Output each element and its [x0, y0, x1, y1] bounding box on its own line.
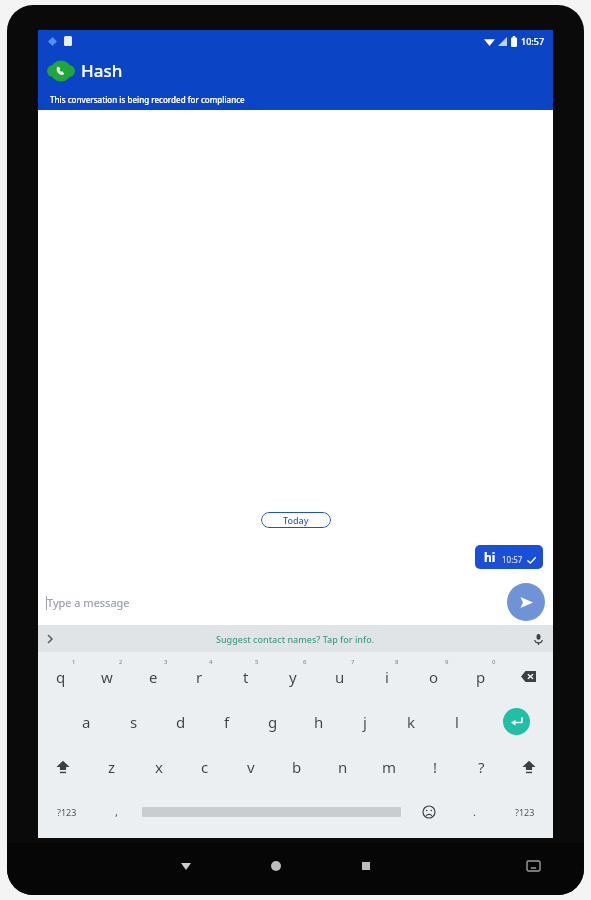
- staticText: j: [363, 712, 367, 732]
- button[interactable]: r: [176, 654, 222, 699]
- button[interactable]: u: [316, 654, 363, 699]
- staticText: z: [108, 757, 116, 777]
- staticText: e: [149, 667, 158, 687]
- staticText: Type a message: [47, 595, 130, 610]
- button[interactable]: e: [130, 654, 176, 699]
- button[interactable]: v: [228, 744, 274, 789]
- button[interactable]: c: [182, 744, 228, 789]
- button[interactable]: k: [388, 699, 434, 744]
- staticText: o: [429, 667, 439, 687]
- staticText: x: [155, 757, 163, 777]
- staticText: Hash: [81, 59, 123, 82]
- staticText: hi: [484, 549, 496, 565]
- button[interactable]: h: [296, 699, 342, 744]
- button[interactable]: Expand suggestions: [42, 631, 58, 647]
- staticText: ?123: [57, 806, 77, 818]
- staticText: p: [476, 667, 486, 687]
- button[interactable]: a: [63, 699, 110, 744]
- staticText: b: [292, 757, 302, 777]
- staticText: .: [473, 804, 476, 819]
- staticText: t: [243, 667, 249, 687]
- staticText: l: [455, 712, 459, 732]
- button[interactable]: l: [434, 699, 480, 744]
- staticText: ?: [478, 757, 485, 777]
- button[interactable]: Today: [261, 512, 331, 528]
- button[interactable]: Shift: [38, 744, 88, 789]
- button[interactable]: w: [84, 654, 130, 699]
- button[interactable]: .: [453, 789, 496, 834]
- button[interactable]: m: [366, 744, 412, 789]
- staticText: d: [176, 712, 186, 732]
- staticText: 10:57: [502, 554, 523, 565]
- button[interactable]: Space: [138, 789, 405, 834]
- staticText: Today: [283, 514, 309, 526]
- staticText: h: [314, 712, 324, 732]
- button[interactable]: x: [135, 744, 182, 789]
- staticText: 7: [351, 658, 355, 666]
- staticText: !: [433, 757, 438, 777]
- button[interactable]: ?: [458, 744, 504, 789]
- staticText: f: [224, 712, 230, 732]
- button[interactable]: !: [412, 744, 458, 789]
- button[interactable]: y: [269, 654, 316, 699]
- button[interactable]: q: [38, 654, 84, 699]
- button[interactable]: j: [342, 699, 388, 744]
- button[interactable]: Back: [173, 853, 199, 879]
- button[interactable]: Shift: [504, 744, 553, 789]
- button[interactable]: Expand suggestions: [38, 625, 553, 652]
- button[interactable]: hi: [475, 545, 543, 569]
- staticText: s: [130, 712, 138, 732]
- staticText: ?123: [515, 806, 535, 818]
- staticText: 8: [395, 658, 399, 666]
- staticText: i: [385, 667, 389, 687]
- staticText: r: [196, 667, 203, 687]
- button[interactable]: ,: [95, 789, 138, 834]
- button[interactable]: z: [88, 744, 135, 789]
- staticText: 0: [492, 658, 496, 666]
- staticText: c: [201, 757, 209, 777]
- button[interactable]: Emoji: [405, 789, 453, 834]
- staticText: 6: [303, 658, 307, 666]
- button[interactable]: Send: [507, 583, 545, 621]
- button[interactable]: n: [320, 744, 366, 789]
- button[interactable]: ?123: [38, 789, 95, 834]
- button[interactable]: Type a message: [46, 595, 507, 610]
- staticText: m: [382, 757, 397, 777]
- button[interactable]: o: [410, 654, 457, 699]
- staticText: 10:57: [521, 35, 545, 47]
- staticText: 2: [119, 658, 123, 666]
- button[interactable]: p: [457, 654, 504, 699]
- staticText: y: [289, 667, 297, 687]
- staticText: v: [247, 757, 255, 777]
- button[interactable]: s: [110, 699, 157, 744]
- button[interactable]: f: [204, 699, 250, 744]
- staticText: u: [335, 667, 345, 687]
- button[interactable]: i: [363, 654, 410, 699]
- staticText: ,: [115, 804, 118, 819]
- staticText: k: [407, 712, 416, 732]
- staticText: n: [338, 757, 348, 777]
- staticText: 4: [209, 658, 213, 666]
- button[interactable]: Recent apps: [353, 853, 379, 879]
- staticText: 1: [72, 658, 76, 666]
- staticText: This conversation is being recorded for …: [50, 94, 245, 105]
- staticText: g: [268, 712, 278, 732]
- staticText: Suggest contact names? Tap for info.: [216, 633, 375, 645]
- staticText: 9: [445, 658, 449, 666]
- button[interactable]: b: [274, 744, 320, 789]
- button[interactable]: ?123: [496, 789, 553, 834]
- staticText: 5: [255, 658, 259, 666]
- button[interactable]: t: [222, 654, 269, 699]
- button[interactable]: d: [157, 699, 204, 744]
- staticText: a: [82, 712, 91, 732]
- button[interactable]: Home: [263, 853, 289, 879]
- staticText: q: [56, 667, 66, 687]
- staticText: w: [101, 667, 113, 687]
- button[interactable]: Voice input: [529, 630, 547, 648]
- button[interactable]: Hash: [38, 52, 553, 89]
- button[interactable]: Enter: [480, 699, 553, 744]
- button[interactable]: Backspace: [504, 654, 553, 699]
- button[interactable]: g: [250, 699, 296, 744]
- button[interactable]: Switch keyboard: [520, 853, 546, 879]
- staticText: 3: [164, 658, 168, 666]
